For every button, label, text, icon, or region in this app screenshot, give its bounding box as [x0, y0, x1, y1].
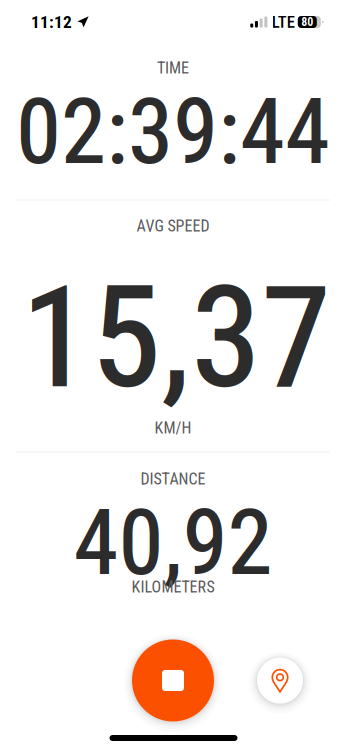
staticText: 80 [301, 15, 313, 29]
staticText: 40,92 [73, 490, 272, 596]
staticText: AVG SPEED [136, 217, 209, 235]
button[interactable]: Map [249, 649, 311, 711]
staticText: DISTANCE [140, 470, 205, 488]
staticText: 15,37 [21, 255, 331, 421]
staticText: TIME [157, 59, 189, 77]
staticText: 02:39:44 [16, 79, 330, 185]
staticText: KM/H [154, 419, 191, 437]
staticText: LTE [272, 12, 295, 32]
staticText: 11:12 [31, 12, 72, 32]
button[interactable]: Stop [124, 631, 222, 729]
staticText: KILOMETERS [131, 578, 214, 596]
